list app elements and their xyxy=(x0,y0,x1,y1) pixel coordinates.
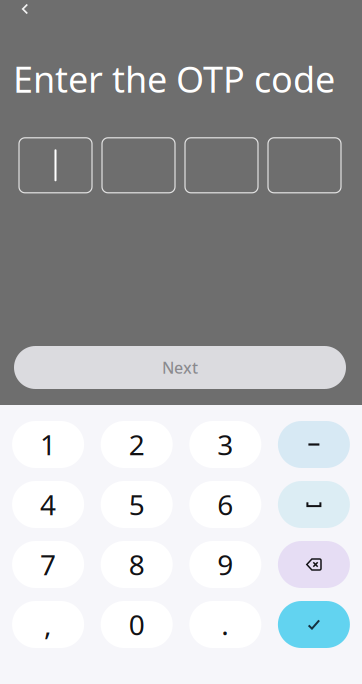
button[interactable]: , xyxy=(12,601,84,648)
button[interactable]: 5 xyxy=(101,481,173,528)
button[interactable] xyxy=(278,481,350,528)
staticText: 6 xyxy=(217,486,233,523)
staticText: 5 xyxy=(129,486,145,523)
staticText: 9 xyxy=(217,546,233,583)
button[interactable]: 1 xyxy=(12,421,84,468)
staticText: . xyxy=(221,606,229,643)
button[interactable] xyxy=(278,541,350,588)
button[interactable]: 9 xyxy=(189,541,261,588)
staticText: 2 xyxy=(129,426,145,463)
button[interactable]: . xyxy=(189,601,261,648)
staticText: Next xyxy=(162,357,198,378)
button[interactable]: 0 xyxy=(101,601,173,648)
button[interactable]: 4 xyxy=(12,481,84,528)
button[interactable]: 8 xyxy=(101,541,173,588)
button[interactable] xyxy=(278,601,350,648)
button[interactable]: 6 xyxy=(189,481,261,528)
button[interactable]: Back xyxy=(8,0,42,18)
button[interactable]: Next xyxy=(14,346,346,389)
button[interactable]: 3 xyxy=(189,421,261,468)
button[interactable]: 7 xyxy=(12,541,84,588)
staticText: 7 xyxy=(40,546,56,583)
button[interactable]: 2 xyxy=(101,421,173,468)
staticText: 4 xyxy=(40,486,56,523)
staticText: , xyxy=(44,606,52,643)
button[interactable] xyxy=(278,421,350,468)
staticText: 3 xyxy=(217,426,233,463)
staticText: Enter the OTP code xyxy=(13,55,335,103)
staticText: 0 xyxy=(129,606,145,643)
staticText: 8 xyxy=(129,546,145,583)
staticText: 1 xyxy=(40,426,56,463)
